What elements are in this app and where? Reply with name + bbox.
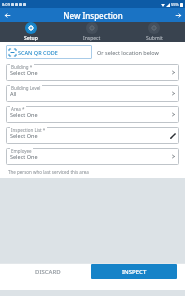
staticText: INSPECT <box>122 268 147 276</box>
staticText: New Inspection <box>63 10 123 21</box>
staticText: Select One <box>10 153 38 160</box>
staticText: Building * <box>11 64 33 70</box>
button[interactable]: Submit <box>123 22 185 42</box>
button[interactable]: Next <box>171 8 185 22</box>
button[interactable]: Select One <box>6 64 179 81</box>
button[interactable]: Select One <box>6 127 179 144</box>
button[interactable]: Setup <box>0 22 61 42</box>
button[interactable]: SCAN QR CODE <box>6 45 92 59</box>
staticText: Select One <box>10 69 38 76</box>
button[interactable]: All <box>6 85 179 102</box>
button[interactable]: INSPECT <box>91 264 177 279</box>
button[interactable]: Select One <box>6 148 179 165</box>
staticText: Inspect <box>83 35 101 42</box>
staticText: DISCARD <box>35 268 61 276</box>
staticText: Building Level <box>11 85 41 91</box>
button[interactable]: DISCARD <box>8 264 87 279</box>
staticText: Or select location below <box>97 49 159 56</box>
staticText: The person who last serviced this area <box>8 169 89 175</box>
staticText: Employee <box>11 148 32 154</box>
staticText: 55% <box>171 2 179 7</box>
staticText: Inspection List * <box>11 127 46 133</box>
staticText: Setup <box>24 35 38 42</box>
staticText: All <box>10 90 17 97</box>
staticText: Select One <box>10 111 38 118</box>
button[interactable]: Back <box>0 8 14 22</box>
button[interactable]: Inspect <box>61 22 123 42</box>
staticText: Area * <box>11 106 25 112</box>
staticText: SCAN QR CODE <box>18 49 58 56</box>
staticText: Submit <box>146 35 163 42</box>
staticText: 8:09 <box>2 2 10 7</box>
staticText: Select One <box>10 132 38 139</box>
button[interactable]: Select One <box>6 106 179 123</box>
